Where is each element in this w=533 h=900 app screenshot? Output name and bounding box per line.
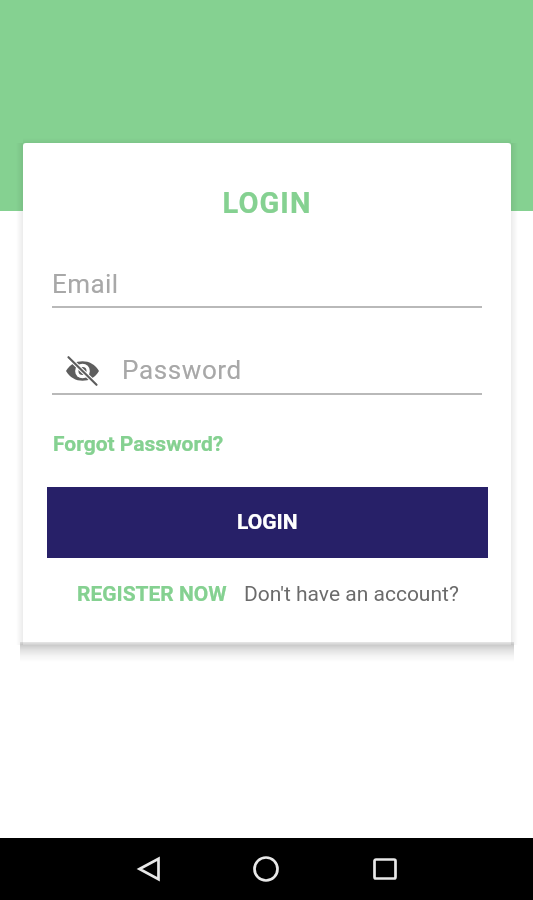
button[interactable]: Back bbox=[121, 841, 177, 897]
staticText: LOGIN bbox=[237, 510, 298, 535]
button[interactable]: Toggle password visibility bbox=[56, 345, 108, 397]
button[interactable]: Home bbox=[238, 841, 294, 897]
staticText: REGISTER NOW bbox=[77, 582, 227, 607]
staticText: Email bbox=[52, 269, 119, 299]
button[interactable]: Recent apps bbox=[357, 841, 413, 897]
staticText: Forgot Password? bbox=[53, 432, 224, 457]
staticText: Password bbox=[122, 355, 242, 385]
button[interactable]: LOGIN bbox=[47, 487, 488, 558]
button[interactable]: REGISTER NOW bbox=[77, 582, 227, 607]
staticText: Don't have an account? bbox=[244, 582, 459, 607]
staticText: LOGIN bbox=[23, 186, 511, 220]
button[interactable]: Forgot Password? bbox=[53, 432, 224, 457]
